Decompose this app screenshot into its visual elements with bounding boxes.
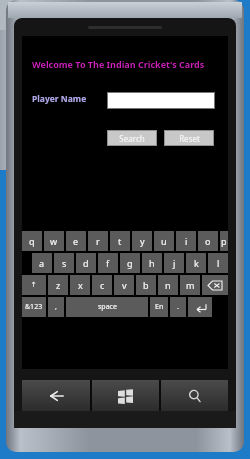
staticText: i xyxy=(185,235,188,247)
staticText: k xyxy=(194,257,199,269)
staticText: p xyxy=(221,235,227,247)
button[interactable]: m xyxy=(180,275,200,295)
button[interactable]: Backspace xyxy=(202,275,228,295)
staticText: m xyxy=(186,279,195,291)
button[interactable]: o xyxy=(198,231,218,251)
button[interactable] xyxy=(107,92,215,109)
staticText: j xyxy=(173,257,176,269)
button[interactable]: f xyxy=(98,253,118,273)
button[interactable]: c xyxy=(92,275,112,295)
staticText: d xyxy=(83,257,89,269)
staticText: h xyxy=(149,257,155,269)
staticText: En xyxy=(155,302,164,312)
button[interactable]: Space xyxy=(66,297,148,317)
button[interactable]: Search xyxy=(107,130,157,146)
staticText: w xyxy=(50,235,58,247)
button[interactable]: Period xyxy=(170,297,186,317)
button[interactable]: u xyxy=(154,231,174,251)
button[interactable]: k xyxy=(186,253,206,273)
button[interactable]: Comma xyxy=(48,297,64,317)
button[interactable]: Reset xyxy=(164,130,214,146)
button[interactable]: w xyxy=(44,231,64,251)
staticText: e xyxy=(73,235,79,247)
staticText: v xyxy=(122,279,127,291)
button[interactable]: x xyxy=(70,275,90,295)
staticText: Welcome To The Indian Cricket's Cards xyxy=(32,58,205,70)
button[interactable]: n xyxy=(158,275,178,295)
button[interactable]: b xyxy=(136,275,156,295)
button[interactable]: h xyxy=(142,253,162,273)
staticText: a xyxy=(39,257,45,269)
staticText: space xyxy=(98,302,117,312)
button[interactable]: Start xyxy=(92,380,159,411)
button[interactable]: Back xyxy=(22,380,90,411)
staticText: &123 xyxy=(25,302,43,312)
staticText: f xyxy=(106,257,110,269)
button[interactable]: Search xyxy=(161,380,228,411)
button[interactable]: y xyxy=(132,231,152,251)
button[interactable]: p xyxy=(220,231,228,251)
button[interactable]: s xyxy=(54,253,74,273)
button[interactable]: r xyxy=(88,231,108,251)
staticText: Reset xyxy=(179,133,200,144)
staticText: g xyxy=(127,257,133,269)
staticText: l xyxy=(217,257,220,269)
button[interactable]: a xyxy=(32,253,52,273)
button[interactable]: q xyxy=(22,231,42,251)
staticText: q xyxy=(29,235,35,247)
button[interactable]: i xyxy=(176,231,196,251)
button[interactable]: l xyxy=(208,253,228,273)
staticText: o xyxy=(205,235,211,247)
staticText: , xyxy=(55,302,57,312)
staticText: b xyxy=(143,279,149,291)
staticText: s xyxy=(62,257,67,269)
staticText: ↑ xyxy=(31,281,37,289)
staticText: . xyxy=(177,302,179,312)
staticText: u xyxy=(161,235,167,247)
button[interactable]: Language xyxy=(150,297,168,317)
button[interactable]: d xyxy=(76,253,96,273)
staticText: x xyxy=(78,279,83,291)
button[interactable]: Numbers and symbols xyxy=(22,297,46,317)
staticText: n xyxy=(165,279,171,291)
staticText: y xyxy=(140,235,145,247)
button[interactable]: z xyxy=(48,275,68,295)
button[interactable]: v xyxy=(114,275,134,295)
staticText: Search xyxy=(119,133,145,144)
staticText: c xyxy=(100,279,105,291)
button[interactable]: t xyxy=(110,231,130,251)
button[interactable]: g xyxy=(120,253,140,273)
staticText: z xyxy=(56,279,61,291)
staticText: t xyxy=(118,235,122,247)
button[interactable]: j xyxy=(164,253,184,273)
staticText: r xyxy=(96,235,100,247)
button[interactable]: e xyxy=(66,231,86,251)
button[interactable]: Shift xyxy=(22,275,46,295)
button[interactable]: Enter xyxy=(188,297,212,317)
staticText: Player Name xyxy=(32,93,87,105)
